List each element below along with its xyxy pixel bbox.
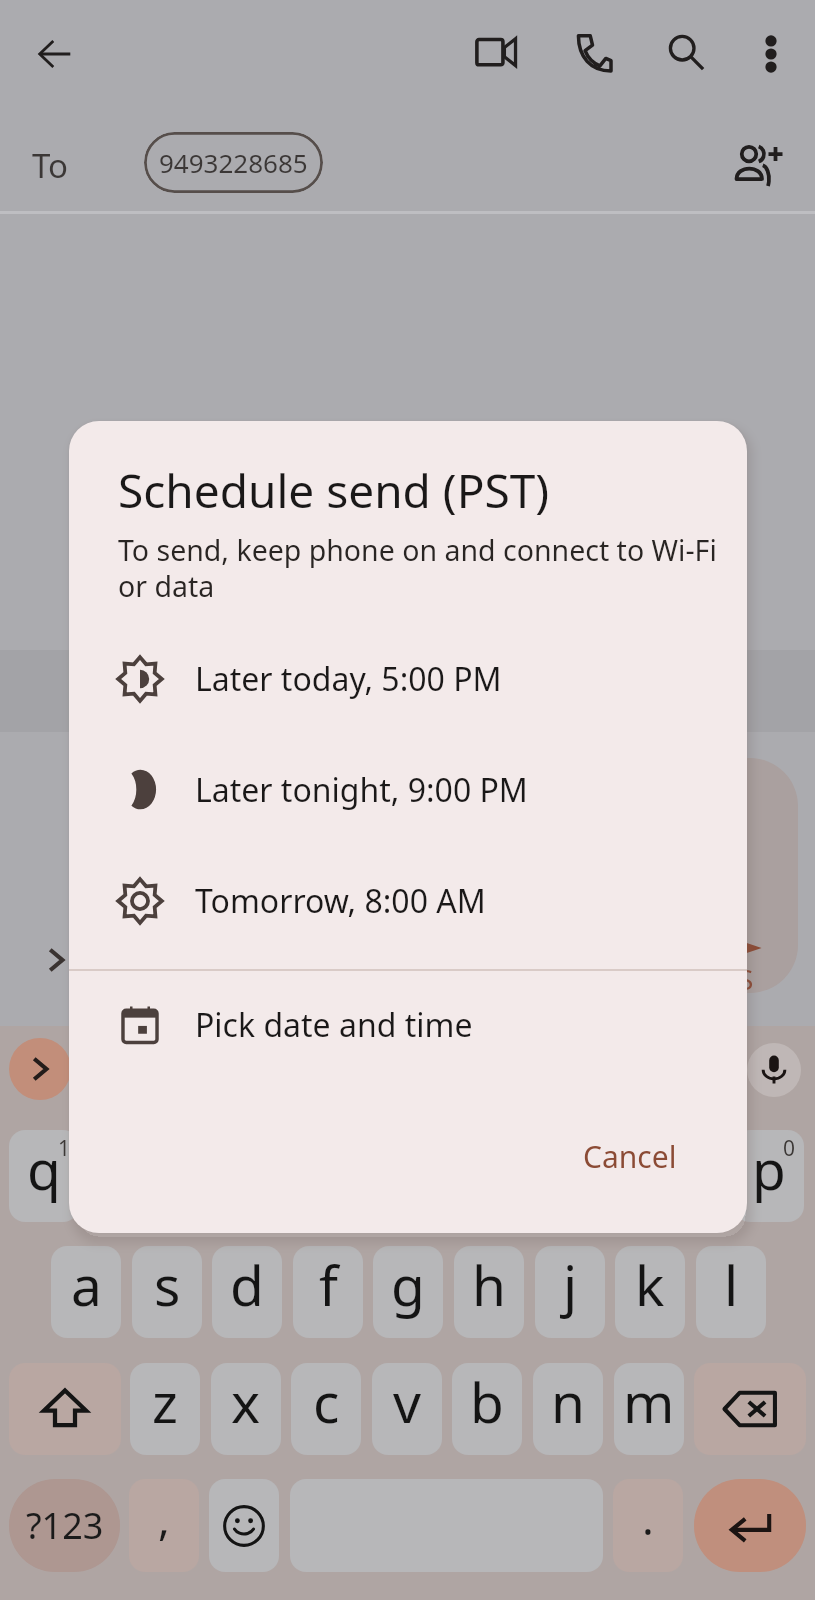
staticText: k (635, 1247, 665, 1322)
button[interactable]: Search (649, 15, 723, 89)
button[interactable]: z (130, 1363, 200, 1455)
staticText: p (752, 1131, 786, 1206)
staticText: f (319, 1247, 338, 1322)
staticText: Later today, 5:00 PM (195, 657, 502, 701)
staticText: Cancel (583, 1136, 677, 1177)
staticText: j (563, 1247, 578, 1322)
button[interactable]: h (454, 1246, 524, 1338)
button[interactable]: 9493228685 (144, 132, 323, 193)
staticText: , (158, 1488, 170, 1548)
staticText: z (152, 1364, 178, 1439)
staticText: 8 (622, 1134, 635, 1163)
staticText: o (672, 1131, 706, 1206)
staticText: ?123 (26, 1501, 104, 1550)
button[interactable]: Shift (9, 1363, 121, 1455)
staticText: v (393, 1364, 421, 1439)
button[interactable]: Emoji (209, 1479, 279, 1572)
button[interactable]: v (372, 1363, 442, 1455)
button[interactable]: x (211, 1363, 281, 1455)
button[interactable]: ?123 (9, 1479, 120, 1572)
button[interactable]: a (51, 1246, 121, 1338)
button[interactable]: Backspace (694, 1363, 806, 1455)
button[interactable]: Video call (459, 16, 533, 90)
button[interactable]: Send SMS (690, 758, 798, 993)
button[interactable]: Enter (694, 1479, 806, 1572)
staticText: g (391, 1247, 425, 1322)
staticText: i (601, 1131, 616, 1206)
button[interactable]: j (535, 1246, 605, 1338)
staticText: c (313, 1364, 340, 1439)
button[interactable]: d (212, 1246, 282, 1338)
button[interactable]: , (129, 1479, 199, 1572)
staticText: 0 (783, 1134, 796, 1163)
button[interactable]: k (615, 1246, 685, 1338)
button[interactable]: l (696, 1246, 766, 1338)
staticText: . (642, 1488, 654, 1548)
staticText: q (27, 1131, 61, 1206)
button[interactable]: Later tonight, 9:00 PM (69, 735, 747, 845)
staticText: s (154, 1247, 181, 1322)
button[interactable]: Cancel (560, 1123, 700, 1189)
staticText: d (230, 1247, 264, 1322)
button[interactable]: m (614, 1363, 684, 1455)
staticText: 9493228685 (159, 145, 308, 180)
button[interactable]: Call (555, 15, 629, 89)
button[interactable]: o (654, 1130, 724, 1222)
staticText: To send, keep phone on and connect to Wi… (118, 531, 717, 606)
button[interactable]: Add people (721, 126, 797, 202)
button[interactable]: f (293, 1246, 363, 1338)
staticText: x (231, 1364, 261, 1439)
staticText: To (32, 143, 69, 188)
button[interactable]: n (533, 1363, 603, 1455)
staticText: S (738, 960, 754, 998)
button[interactable]: s (132, 1246, 202, 1338)
staticText: b (470, 1364, 504, 1439)
staticText: 1 (58, 1134, 71, 1163)
staticText: a (71, 1247, 102, 1322)
button[interactable]: b (452, 1363, 522, 1455)
staticText: Later tonight, 9:00 PM (195, 768, 528, 812)
button[interactable]: Back (18, 17, 92, 91)
staticText: h (472, 1247, 506, 1322)
button[interactable]: More options (738, 21, 804, 87)
button[interactable]: Send (9, 1038, 71, 1100)
staticText: Schedule send (PST) (118, 459, 550, 522)
button[interactable]: i (573, 1130, 643, 1222)
button[interactable]: q (9, 1130, 79, 1222)
button[interactable]: Voice input (747, 1043, 801, 1097)
staticText: n (551, 1364, 585, 1439)
button[interactable]: . (613, 1479, 683, 1572)
button[interactable]: c (291, 1363, 361, 1455)
button[interactable]: Pick date and time (69, 970, 747, 1080)
staticText: Pick date and time (195, 1003, 473, 1047)
staticText: Tomorrow, 8:00 AM (195, 879, 486, 923)
button[interactable]: p (734, 1130, 804, 1222)
button[interactable]: Later today, 5:00 PM (69, 624, 747, 734)
staticText: l (724, 1247, 739, 1322)
staticText: m (623, 1364, 675, 1439)
button[interactable]: Tomorrow, 8:00 AM (69, 846, 747, 956)
button[interactable]: g (373, 1246, 443, 1338)
